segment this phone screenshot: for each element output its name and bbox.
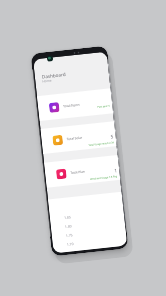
staticText: 1.65 — [67, 250, 75, 252]
staticText: 1.80 — [65, 223, 72, 229]
staticText: 1.70 — [67, 241, 74, 247]
staticText: 1.75 — [66, 232, 73, 238]
staticText: 5 — [110, 133, 114, 141]
staticText: 1.85 — [64, 214, 71, 220]
staticText: Total Plan — [70, 169, 85, 175]
staticText: Wind and Usage 7.8 Pkg — [90, 174, 118, 180]
staticText: Total Solar — [66, 136, 83, 141]
staticText: Home — [42, 78, 53, 83]
button[interactable]: Total Items — [37, 88, 113, 121]
button[interactable]: Total Solar — [40, 121, 117, 154]
staticText: 1 — [114, 167, 118, 174]
staticText: Past year 5 — [97, 103, 110, 108]
button[interactable]: Total Plan — [44, 155, 120, 188]
staticText: Total Items — [63, 103, 80, 108]
staticText: Dashboard — [42, 71, 66, 79]
staticText: Total Usage result 2.34 — [88, 140, 114, 146]
